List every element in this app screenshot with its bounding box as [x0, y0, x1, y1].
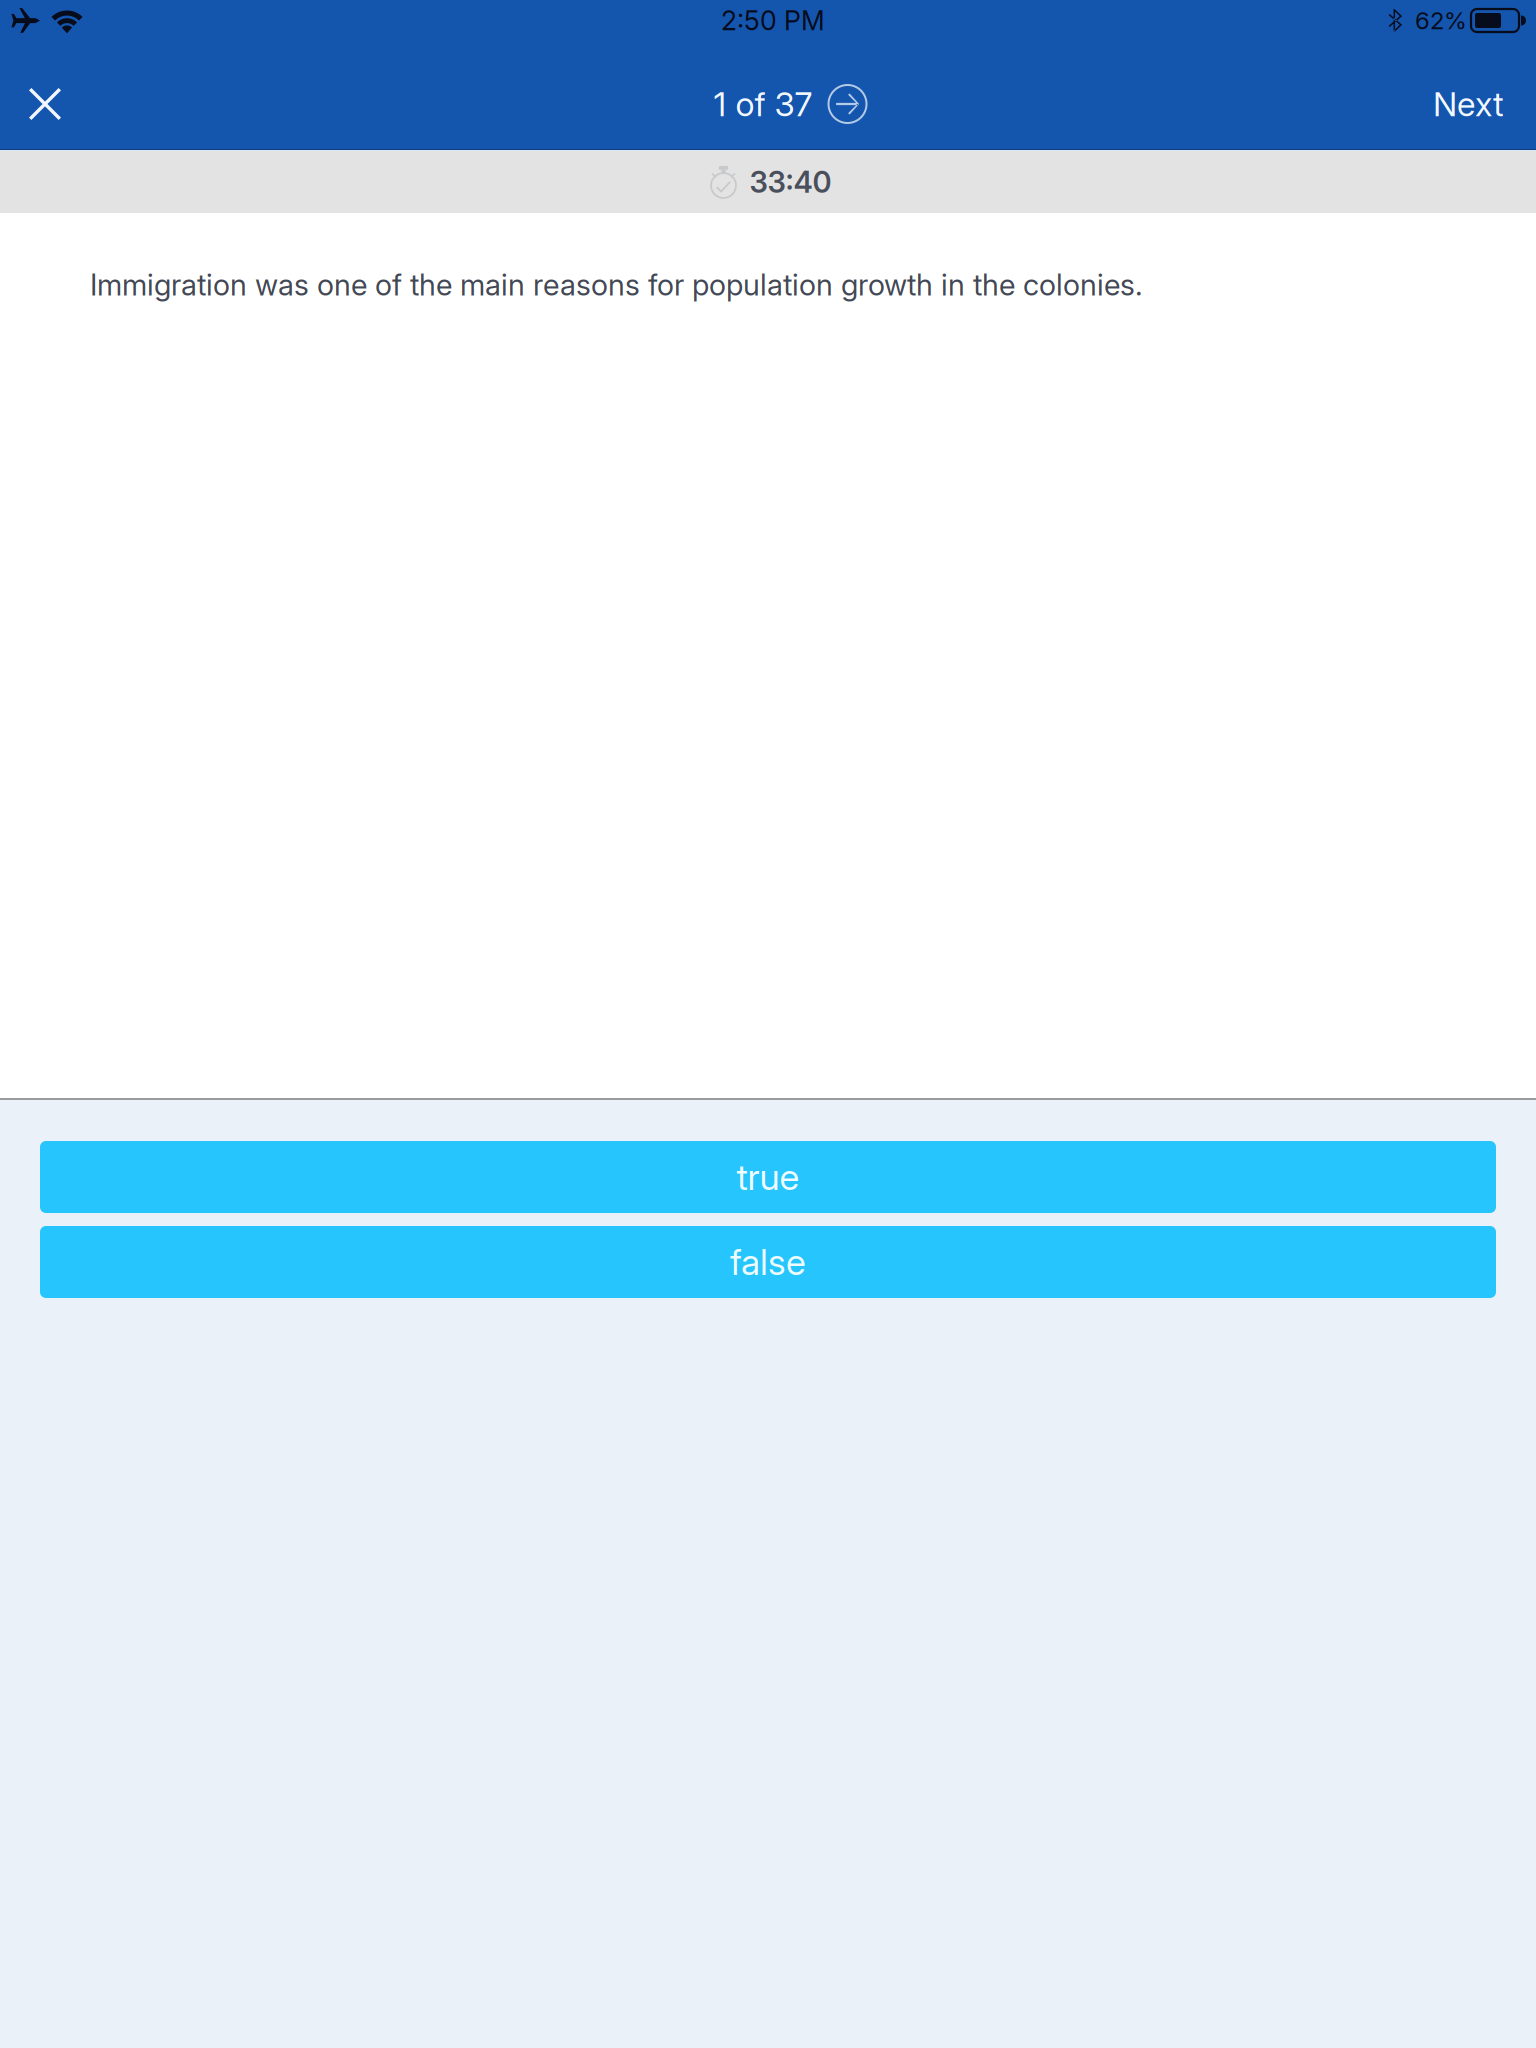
staticText: Immigration was one of the main reasons …: [90, 267, 1143, 302]
button[interactable]: true: [40, 1141, 1496, 1213]
button[interactable]: Close: [0, 41, 97, 149]
button[interactable]: Next: [1397, 41, 1536, 149]
staticText: false: [730, 1240, 806, 1284]
button[interactable]: false: [40, 1226, 1496, 1298]
staticText: 33:40: [749, 164, 831, 200]
staticText: 62%: [1415, 6, 1467, 35]
staticText: 2:50 PM: [721, 4, 825, 37]
staticText: 1 of 37: [713, 84, 812, 124]
staticText: Next: [1433, 84, 1504, 124]
button[interactable]: 1 of 37: [699, 66, 880, 142]
staticText: true: [736, 1155, 799, 1199]
